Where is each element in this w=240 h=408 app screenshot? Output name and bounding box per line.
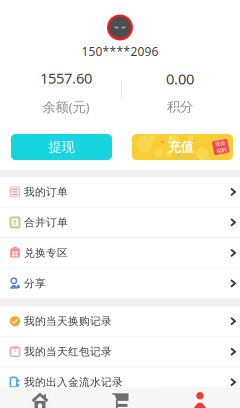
button[interactable]: 兑换专区 [0, 238, 240, 268]
staticText: 1557.60 [40, 68, 92, 88]
button[interactable]: 首页 [0, 388, 80, 408]
button[interactable]: 充值 [132, 134, 233, 160]
button[interactable]: 我的当天换购记录 [0, 306, 240, 336]
staticText: 兑换专区 [24, 246, 68, 259]
staticText: 我的订单 [24, 185, 68, 198]
staticText: 积分 [167, 99, 193, 115]
button[interactable]: 分享 [0, 268, 240, 298]
button[interactable]: 合并订单 [0, 207, 240, 237]
staticText: 合并订单 [24, 216, 68, 229]
button[interactable]: 我的当天红包记录 [0, 337, 240, 367]
staticText: 150****2096 [81, 43, 158, 59]
staticText: 充值 [167, 139, 193, 155]
button[interactable]: 购物车 [80, 388, 160, 408]
staticText: 我的当天红包记录 [24, 345, 112, 358]
button[interactable]: 我的 [160, 388, 240, 408]
staticText: 余额(元) [42, 98, 89, 116]
staticText: 现金 [216, 140, 226, 147]
staticText: 提现 [48, 139, 74, 155]
button[interactable]: 我的出入金流水记录 [0, 367, 240, 397]
staticText: 福利 [216, 147, 226, 154]
button[interactable]: 提现 [11, 134, 112, 160]
staticText: 0.00 [166, 69, 194, 89]
staticText: 我的当天换购记录 [24, 315, 112, 328]
button[interactable]: 我的订单 [0, 177, 240, 207]
staticText: 分享 [24, 277, 46, 290]
staticText: 我的出入金流水记录 [24, 376, 123, 389]
